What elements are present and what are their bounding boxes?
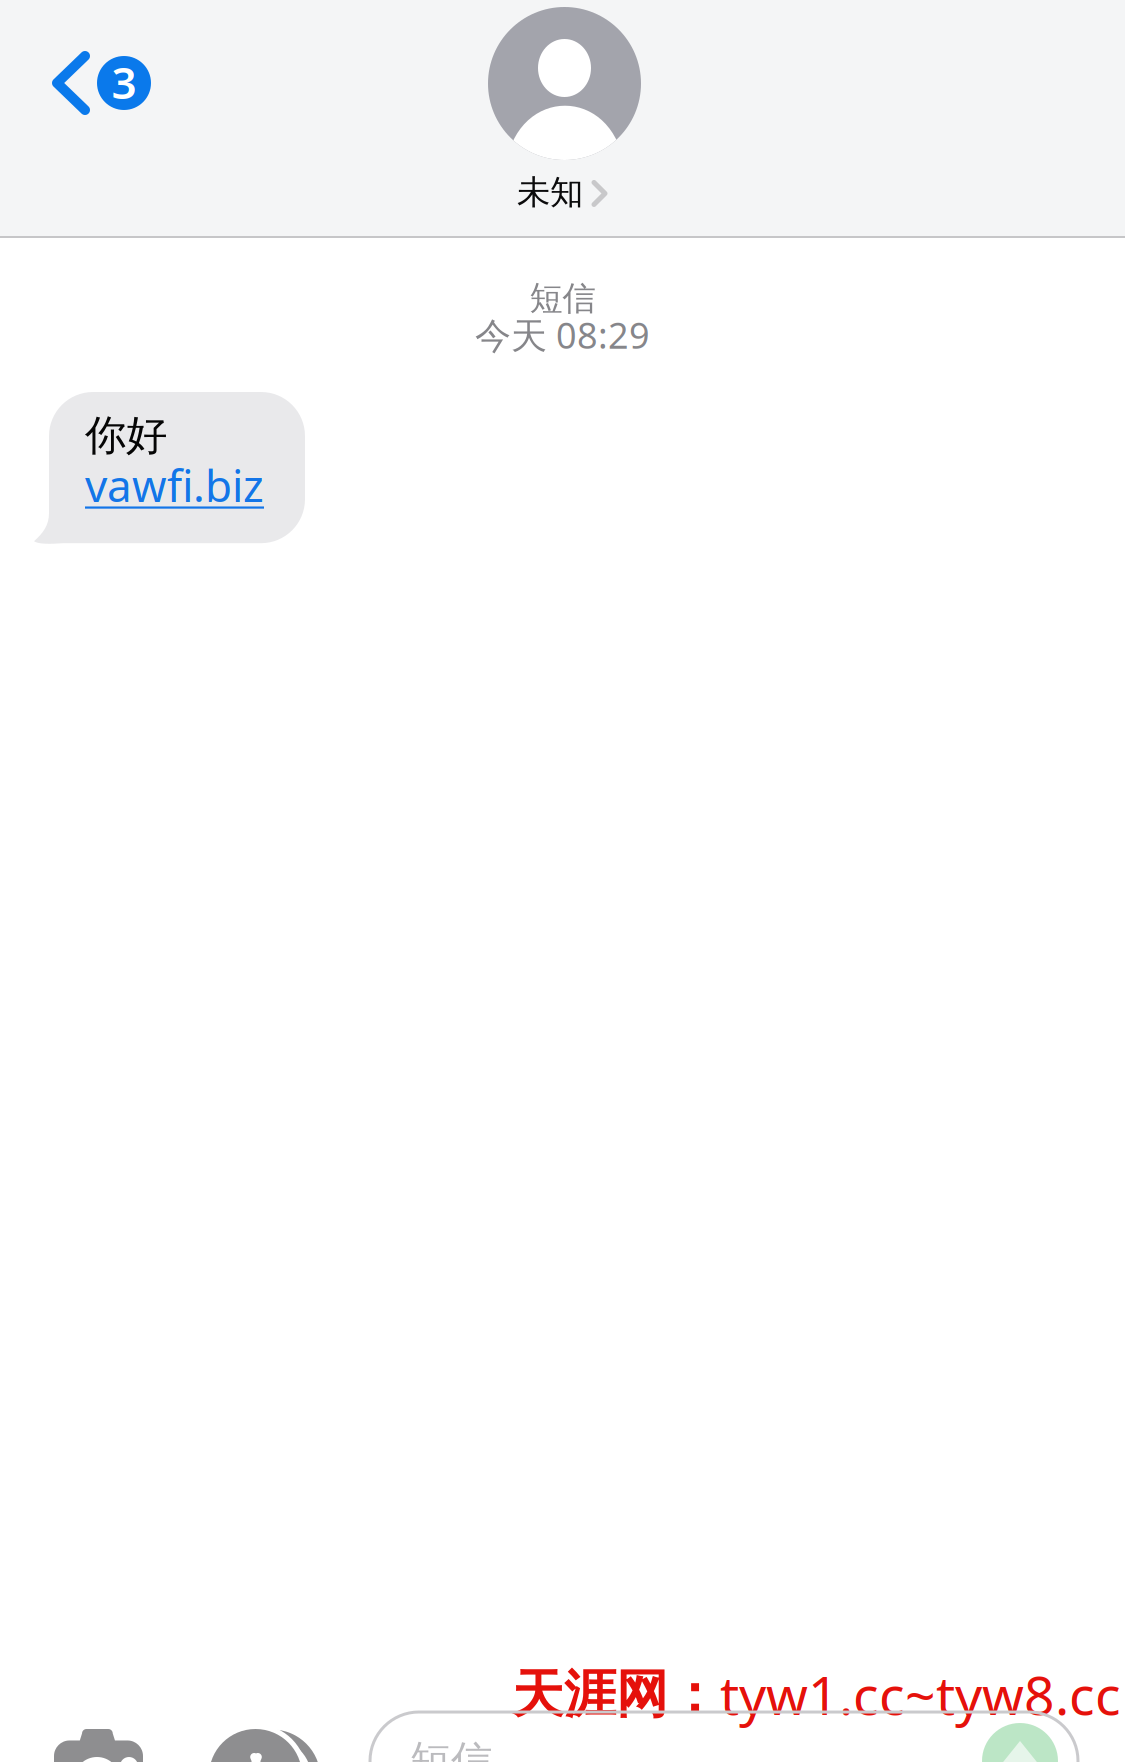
staticText: 短信 [410, 1736, 492, 1762]
button[interactable]: 未知 [488, 7, 641, 215]
staticText: 3 [111, 53, 136, 111]
staticText: vawfi.biz [85, 456, 264, 514]
staticText: 未知 [517, 172, 583, 213]
staticText: tyw1.cc~tyw8.cc [720, 1659, 1121, 1730]
button[interactable]: App Store [209, 1729, 324, 1762]
button[interactable]: Send [982, 1723, 1058, 1762]
button[interactable]: Camera [54, 1729, 143, 1762]
staticText: 你好 [85, 410, 167, 461]
staticText: 天涯网： [512, 1662, 720, 1726]
button[interactable]: Back, 3 unread [46, 27, 196, 147]
staticText: 短信 [529, 278, 595, 319]
staticText: 今天 08:29 [475, 311, 650, 359]
